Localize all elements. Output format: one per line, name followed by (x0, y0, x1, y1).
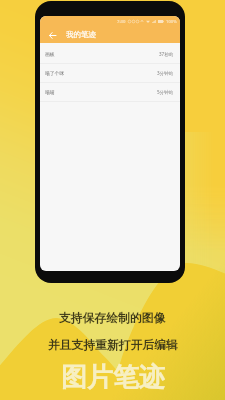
staticText: 7:30 (117, 19, 126, 25)
button[interactable]: 喵喵 (40, 83, 180, 101)
staticText: 37秒前 (159, 51, 174, 57)
staticText: 5分钟前 (157, 89, 174, 95)
staticText: 喵喵 (45, 89, 55, 95)
staticText: 画板 (45, 51, 55, 57)
staticText: 3分钟前 (157, 70, 174, 76)
staticText: 我的笔迹 (66, 30, 96, 39)
button[interactable]: 喵了个咪 (40, 64, 180, 82)
staticText: 支持保存绘制的图像 (59, 311, 166, 326)
staticText: 图片笔迹 (61, 361, 165, 394)
button[interactable]: Back (46, 29, 58, 41)
staticText: 100% (166, 19, 177, 25)
staticText: 并且支持重新打开后编辑 (48, 338, 178, 353)
staticText: 喵了个咪 (45, 70, 65, 76)
button[interactable]: 画板 (40, 45, 180, 63)
